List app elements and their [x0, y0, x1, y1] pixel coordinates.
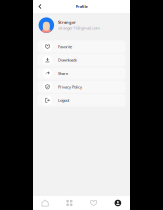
button[interactable]: Favorite: [37, 40, 125, 53]
button[interactable]: Back: [33, 0, 47, 13]
staticText: Logout: [58, 98, 69, 103]
button[interactable]: Profile: [106, 196, 130, 210]
button[interactable]: Favorites: [81, 196, 106, 210]
staticText: Stranger: [58, 20, 76, 25]
staticText: Profile: [75, 4, 87, 9]
staticText: stranger11@gmail.com: [58, 25, 100, 31]
staticText: Downloads: [58, 57, 77, 63]
button[interactable]: Privacy Policy: [37, 81, 125, 93]
staticText: Privacy Policy: [58, 84, 82, 89]
button[interactable]: Home: [33, 196, 57, 210]
staticText: Favorite: [58, 44, 72, 49]
button[interactable]: Share: [37, 67, 125, 80]
button[interactable]: Logout: [37, 94, 125, 106]
staticText: Share: [58, 71, 68, 76]
button[interactable]: Downloads: [37, 54, 125, 66]
button[interactable]: Categories: [57, 196, 81, 210]
